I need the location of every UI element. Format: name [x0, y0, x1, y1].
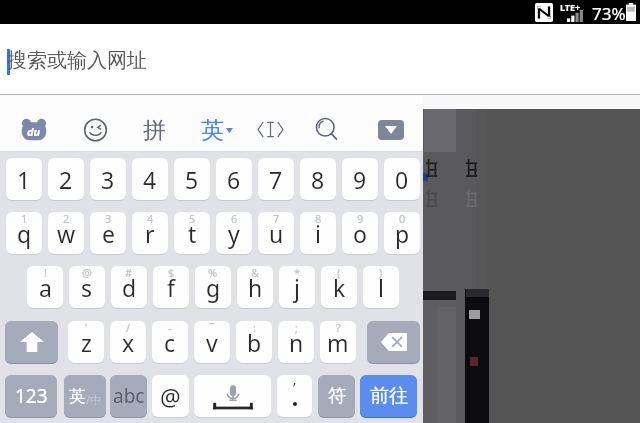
- staticText: 拼: [143, 116, 166, 145]
- staticText: 前往: [370, 384, 408, 408]
- button[interactable]: ;: [278, 321, 314, 364]
- staticText: w: [57, 218, 76, 249]
- staticText: /中: [86, 392, 102, 407]
- button[interactable]: ¯: [194, 321, 230, 364]
- button[interactable]: 前往: [360, 375, 417, 418]
- staticText: 9: [357, 212, 364, 226]
- staticText: 7: [273, 212, 280, 226]
- staticText: 4: [143, 164, 157, 195]
- button[interactable]: 0: [384, 212, 420, 255]
- button[interactable]: &: [237, 266, 273, 309]
- button[interactable]: ’: [68, 321, 104, 364]
- button[interactable]: 8: [300, 158, 336, 201]
- button[interactable]: 1: [6, 158, 42, 201]
- button[interactable]: @: [152, 375, 189, 418]
- button[interactable]: 拼: [134, 110, 174, 150]
- staticText: ;: [295, 321, 298, 335]
- staticText: (: [337, 266, 341, 280]
- staticText: 英: [201, 116, 224, 145]
- staticText: c: [164, 327, 176, 358]
- button[interactable]: Backspace: [367, 321, 420, 364]
- staticText: y: [228, 218, 240, 249]
- staticText: b: [247, 327, 262, 358]
- staticText: ’: [85, 321, 87, 335]
- staticText: ¯: [209, 321, 215, 335]
- staticText: 搜索或输入网址: [7, 48, 147, 73]
- staticText: s: [81, 272, 93, 303]
- button[interactable]: Baidu input method: [14, 110, 54, 150]
- staticText: 6: [231, 212, 238, 226]
- button[interactable]: ?: [320, 321, 356, 364]
- button[interactable]: Emoji: [75, 110, 115, 150]
- staticText: x: [122, 327, 135, 358]
- button[interactable]: %: [195, 266, 231, 309]
- button[interactable]: 3: [90, 212, 126, 255]
- button[interactable]: 8: [300, 212, 336, 255]
- button[interactable]: /: [110, 321, 146, 364]
- button[interactable]: -: [152, 321, 188, 364]
- other: Backspace: [381, 333, 407, 351]
- staticText: f: [167, 272, 175, 303]
- button[interactable]: @: [69, 266, 105, 309]
- button[interactable]: (: [321, 266, 357, 309]
- button[interactable]: 123: [5, 375, 57, 418]
- button[interactable]: 1: [6, 212, 42, 255]
- button[interactable]: 5: [174, 158, 210, 201]
- button[interactable]: 9: [342, 158, 378, 201]
- button[interactable]: ): [363, 266, 399, 309]
- staticText: z: [81, 327, 92, 358]
- button[interactable]: 英: [64, 375, 106, 418]
- button[interactable]: Hide keyboard: [370, 110, 412, 150]
- button[interactable]: 9: [342, 212, 378, 255]
- staticText: 3: [101, 164, 115, 195]
- button[interactable]: abc: [110, 375, 147, 418]
- button[interactable]: 6: [216, 158, 252, 201]
- staticText: 9: [353, 164, 367, 195]
- button[interactable]: Search: [307, 109, 347, 149]
- staticText: LTE+: [560, 1, 581, 13]
- staticText: a: [39, 272, 52, 303]
- button[interactable]: ’: [277, 375, 312, 418]
- button[interactable]: !: [27, 266, 63, 309]
- button[interactable]: Space: [194, 375, 271, 418]
- button[interactable]: 4: [132, 158, 168, 201]
- staticText: /: [126, 321, 131, 335]
- button[interactable]: 4: [132, 212, 168, 255]
- staticText: o: [353, 218, 367, 249]
- staticText: 1: [17, 164, 31, 195]
- staticText: r: [145, 218, 155, 249]
- button[interactable]: 6: [216, 212, 252, 255]
- staticText: q: [17, 218, 32, 249]
- button[interactable]: 7: [258, 212, 294, 255]
- staticText: 英: [69, 386, 86, 407]
- staticText: :: [253, 321, 256, 335]
- staticText: @: [160, 381, 181, 412]
- staticText: g: [206, 272, 221, 303]
- button[interactable]: 5: [174, 212, 210, 255]
- button[interactable]: $: [153, 266, 189, 309]
- staticText: !: [44, 266, 47, 280]
- button[interactable]: 符: [318, 375, 355, 418]
- staticText: 4: [147, 212, 154, 226]
- staticText: h: [248, 272, 263, 303]
- staticText: ): [379, 266, 383, 280]
- button[interactable]: #: [111, 266, 147, 309]
- button[interactable]: *: [279, 266, 315, 309]
- staticText: n: [289, 327, 304, 358]
- button[interactable]: Shift: [5, 321, 58, 364]
- button[interactable]: 7: [258, 158, 294, 201]
- staticText: 2: [63, 212, 70, 226]
- staticText: 1: [21, 212, 28, 226]
- button[interactable]: :: [236, 321, 272, 364]
- staticText: &: [251, 266, 260, 280]
- staticText: du: [27, 124, 41, 139]
- button[interactable]: 0: [384, 158, 420, 201]
- button[interactable]: Move cursor: [250, 109, 290, 149]
- button[interactable]: 英: [195, 110, 239, 150]
- button[interactable]: 3: [90, 158, 126, 201]
- staticText: *: [294, 266, 301, 280]
- button[interactable]: 2: [48, 212, 84, 255]
- staticText: m: [327, 327, 349, 358]
- button[interactable]: 2: [48, 158, 84, 201]
- staticText: $: [168, 266, 175, 280]
